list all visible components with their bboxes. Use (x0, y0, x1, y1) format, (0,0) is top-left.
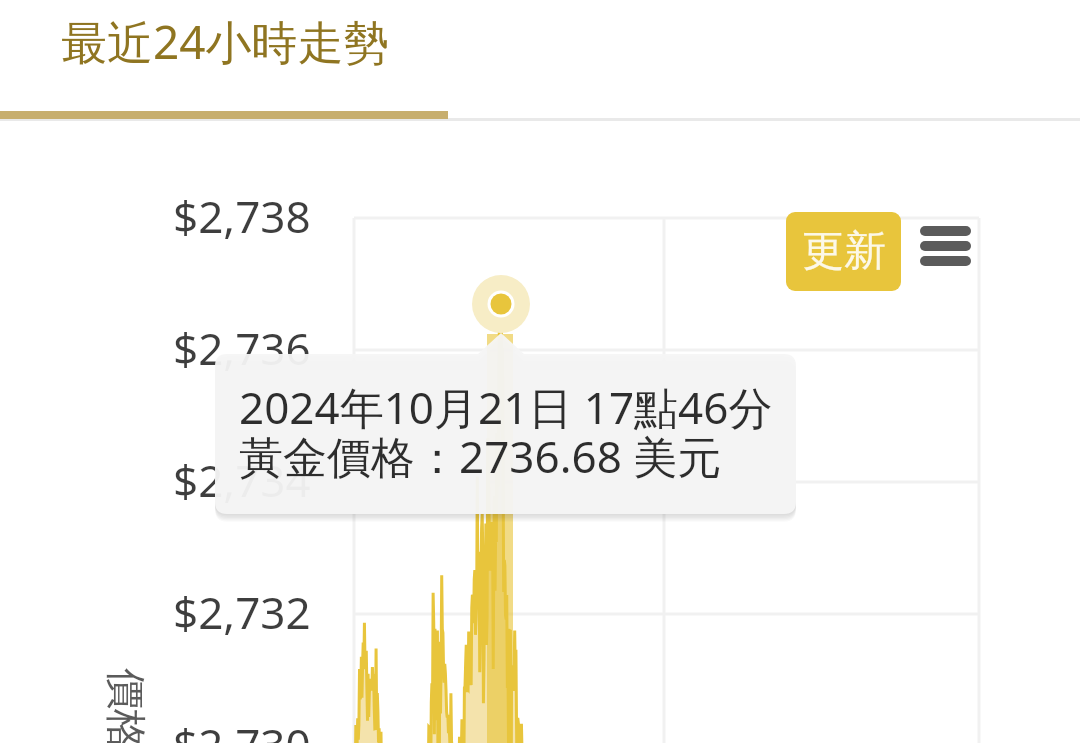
button[interactable]: Chart menu (906, 207, 985, 285)
staticText: $2,732 (173, 582, 311, 640)
button[interactable]: 更新 (786, 212, 901, 291)
staticText: $2,738 (173, 186, 311, 244)
staticText: 黃金價格：2736.68 美元 (239, 426, 722, 486)
staticText: $2,734 (173, 450, 311, 508)
staticText: 更新 (802, 225, 886, 278)
staticText: $2,730 (173, 714, 311, 743)
staticText: 最近24小時走勢 (61, 10, 390, 73)
staticText: 2024年10月21日 17點46分 (239, 377, 773, 437)
staticText: $2,736 (173, 318, 311, 376)
staticText: 價格（美元） (99, 668, 151, 743)
